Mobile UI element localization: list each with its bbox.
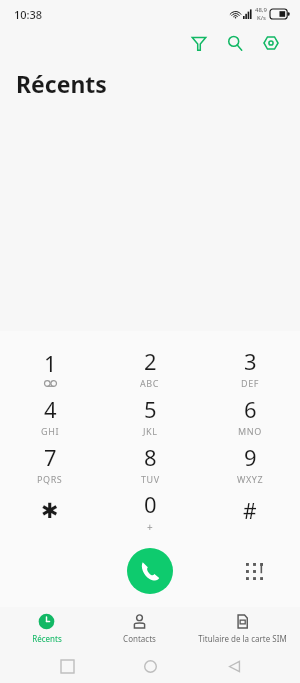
button[interactable]: Hide keypad <box>236 553 272 589</box>
staticText: MNO <box>238 425 262 437</box>
button[interactable]: Home <box>133 649 167 683</box>
staticText: 5 <box>144 394 157 424</box>
staticText: 48,9 <box>255 6 267 14</box>
button[interactable]: Recent apps <box>50 649 84 683</box>
staticText: 4 <box>44 394 57 424</box>
staticText: 8 <box>144 442 157 472</box>
staticText: Contacts <box>123 633 156 644</box>
staticText: ✱ <box>41 499 59 523</box>
button[interactable]: Settings <box>256 28 286 58</box>
button[interactable]: Back <box>217 649 251 683</box>
button[interactable]: Call <box>127 548 173 594</box>
staticText: Titulaire de la carte SIM <box>198 633 287 644</box>
staticText: 3 <box>244 346 257 376</box>
button[interactable]: # <box>200 487 300 535</box>
button[interactable]: Search <box>220 28 250 58</box>
button[interactable]: 6 <box>200 391 300 439</box>
staticText: 1 <box>44 348 57 378</box>
staticText: TUV <box>141 473 160 485</box>
button[interactable]: 7 <box>0 439 100 487</box>
button[interactable]: 5 <box>100 391 200 439</box>
button[interactable]: ✱ <box>0 487 100 535</box>
button[interactable]: 8 <box>100 439 200 487</box>
staticText: # <box>243 497 257 526</box>
staticText: 9 <box>244 442 257 472</box>
staticText: PQRS <box>37 473 63 485</box>
staticText: 6 <box>244 394 257 424</box>
staticText: DEF <box>241 377 260 389</box>
button[interactable]: 4 <box>0 391 100 439</box>
staticText: WXYZ <box>237 473 264 485</box>
staticText: JKL <box>143 425 158 437</box>
staticText: 0 <box>144 489 157 519</box>
button[interactable]: Filter <box>184 28 214 58</box>
button[interactable]: 0 <box>100 487 200 535</box>
button[interactable]: Contacts <box>93 607 185 649</box>
button[interactable]: 9 <box>200 439 300 487</box>
staticText: Récents <box>32 633 62 644</box>
staticText: Récents <box>16 68 107 99</box>
button[interactable]: 2 <box>100 343 200 391</box>
staticText: 2 <box>144 346 157 376</box>
button[interactable]: Titulaire de la carte SIM <box>185 607 300 649</box>
staticText: GHI <box>41 425 60 437</box>
staticText: 7 <box>44 442 57 472</box>
staticText: ABC <box>140 377 160 389</box>
button[interactable]: Récents <box>0 607 93 649</box>
button[interactable]: 3 <box>200 343 300 391</box>
staticText: + <box>147 520 154 534</box>
button[interactable]: 1 <box>0 343 100 391</box>
staticText: K/s <box>257 14 266 22</box>
staticText: 10:38 <box>14 7 43 22</box>
